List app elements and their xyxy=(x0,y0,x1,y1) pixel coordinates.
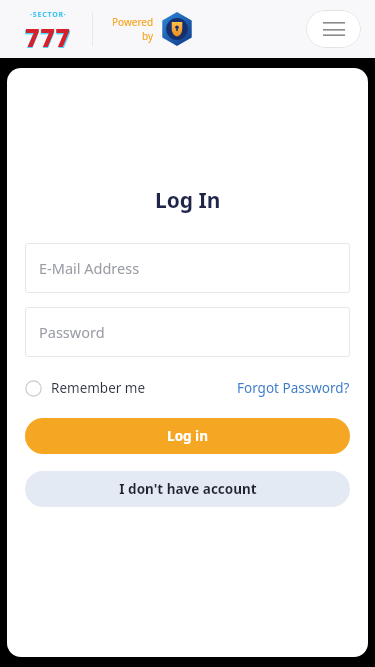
staticText: Log in xyxy=(167,427,208,445)
staticText: ·SECTOR· xyxy=(30,10,67,20)
button[interactable]: Log in xyxy=(25,418,350,454)
staticText: by xyxy=(142,29,154,43)
staticText: Forgot Password? xyxy=(237,379,350,397)
button[interactable]: Remember me xyxy=(25,377,146,399)
staticText: Remember me xyxy=(51,379,146,397)
button[interactable]: Menu xyxy=(306,10,361,48)
button[interactable]: Password xyxy=(25,307,350,357)
staticText: Log In xyxy=(155,186,221,215)
staticText: 777 xyxy=(24,21,72,48)
staticText: I don't have account xyxy=(119,480,257,498)
button[interactable]: I don't have account xyxy=(25,471,350,507)
staticText: Password xyxy=(39,322,105,342)
staticText: 777 xyxy=(25,20,71,47)
staticText: E-Mail Address xyxy=(39,258,140,278)
button[interactable]: Sector 777 home xyxy=(12,10,84,48)
button[interactable]: E-Mail Address xyxy=(25,243,350,293)
staticText: Powered xyxy=(112,15,154,29)
button[interactable]: Forgot Password? xyxy=(237,377,350,399)
